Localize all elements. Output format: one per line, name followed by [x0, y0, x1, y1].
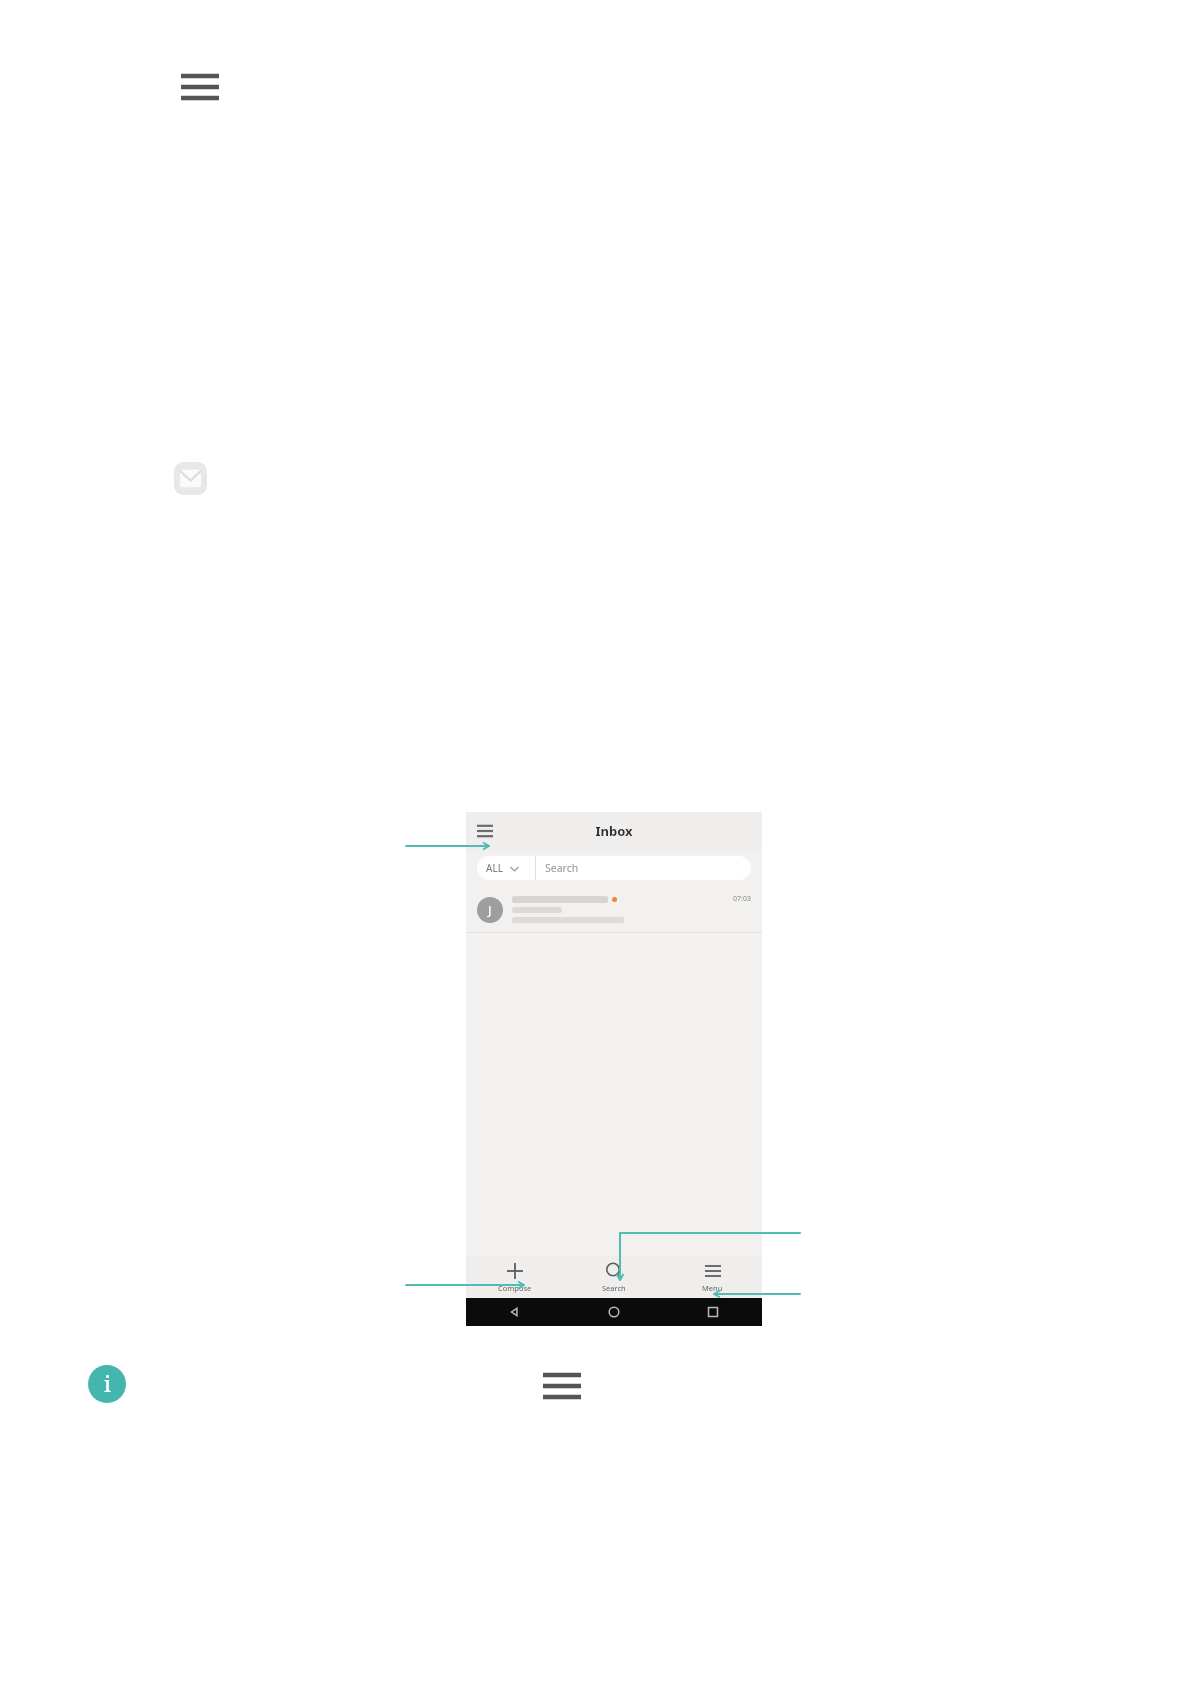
staticText: ALL [486, 861, 503, 875]
button[interactable]: J [466, 886, 762, 933]
staticText: 07:03 [733, 894, 751, 904]
staticText: Inbox [595, 822, 633, 840]
button[interactable]: Menu [543, 1372, 581, 1400]
staticText: Menu [702, 1283, 723, 1293]
button[interactable]: Information [88, 1365, 126, 1403]
button[interactable]: Navigation drawer [477, 824, 493, 838]
button[interactable]: Search [564, 1256, 663, 1298]
button[interactable]: Menu [181, 70, 219, 104]
staticText: Search [545, 861, 579, 875]
button[interactable]: Recents [663, 1298, 762, 1326]
staticText: Search [602, 1283, 626, 1293]
staticText: Compose [498, 1283, 532, 1293]
staticText: i [104, 1370, 111, 1399]
button[interactable]: Email [174, 462, 207, 495]
staticText: J [488, 901, 492, 919]
button[interactable]: Compose [466, 1256, 564, 1298]
button[interactable]: Back [466, 1298, 564, 1326]
button[interactable]: ALL [477, 856, 751, 880]
button[interactable]: Menu [663, 1256, 762, 1298]
button[interactable]: Home [564, 1298, 663, 1326]
button[interactable]: ALL [477, 856, 535, 880]
